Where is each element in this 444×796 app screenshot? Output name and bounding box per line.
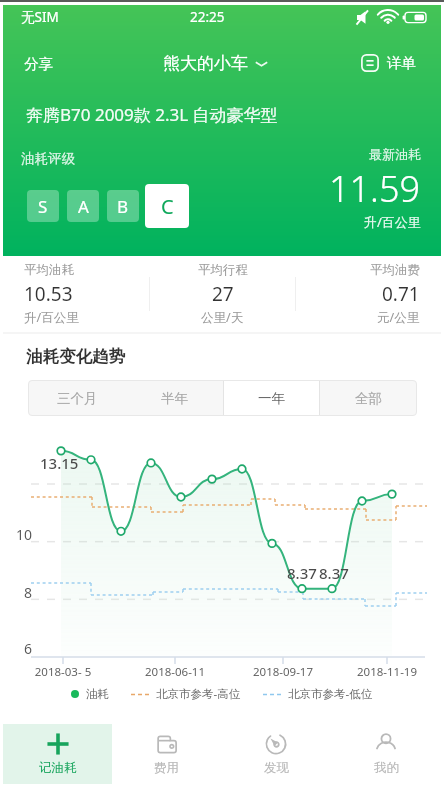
button[interactable]: 分享 bbox=[19, 51, 58, 77]
staticText: 费用 bbox=[154, 760, 179, 776]
staticText: 我的 bbox=[374, 760, 399, 776]
button[interactable]: 费用 bbox=[112, 724, 221, 784]
button[interactable]: 半年 bbox=[126, 380, 223, 416]
staticText: 10 bbox=[3, 525, 32, 544]
button[interactable]: 平均油耗 bbox=[3, 256, 149, 332]
staticText: 全部 bbox=[355, 390, 382, 407]
button[interactable]: B bbox=[107, 190, 139, 222]
staticText: 发现 bbox=[264, 760, 289, 776]
staticText: 2018-11-19 bbox=[343, 664, 431, 680]
staticText: 10.53 bbox=[24, 281, 73, 307]
staticText: 熊大的小车 bbox=[163, 53, 248, 74]
staticText: A bbox=[78, 195, 89, 218]
staticText: 详单 bbox=[387, 54, 416, 72]
staticText: 油耗变化趋势 bbox=[26, 346, 125, 367]
staticText: B bbox=[117, 195, 129, 218]
staticText: 最新油耗 bbox=[369, 146, 421, 162]
staticText: 平均油耗 bbox=[24, 262, 74, 278]
button[interactable]: 我的 bbox=[331, 724, 441, 784]
staticText: C bbox=[161, 193, 174, 220]
button[interactable]: 平均油费 bbox=[296, 256, 441, 332]
staticText: 升/百公里 bbox=[24, 309, 79, 326]
staticText: 三个月 bbox=[57, 390, 98, 407]
staticText: 2018-09-17 bbox=[239, 664, 327, 680]
staticText: 半年 bbox=[161, 390, 188, 407]
staticText: 平均行程 bbox=[198, 262, 248, 278]
staticText: 无SIM bbox=[21, 8, 59, 26]
button[interactable]: 记油耗 bbox=[3, 724, 112, 784]
button[interactable]: 三个月 bbox=[28, 380, 126, 416]
button[interactable]: 全部 bbox=[320, 380, 417, 416]
staticText: 北京市参考-低位 bbox=[288, 686, 373, 702]
button[interactable]: 一年 bbox=[223, 380, 320, 416]
staticText: 22:25 bbox=[190, 8, 225, 26]
button[interactable]: 发现 bbox=[221, 724, 331, 784]
staticText: 2018-06-11 bbox=[131, 664, 219, 680]
staticText: 6 bbox=[3, 639, 32, 658]
staticText: 分享 bbox=[24, 55, 53, 73]
button[interactable]: A bbox=[67, 190, 99, 222]
staticText: 13.15 bbox=[40, 453, 79, 473]
button[interactable]: C bbox=[145, 184, 189, 228]
staticText: 8 bbox=[3, 583, 32, 602]
button[interactable]: S bbox=[27, 190, 59, 222]
staticText: 油耗评级 bbox=[21, 150, 75, 167]
staticText: 平均油费 bbox=[370, 262, 420, 278]
staticText: 8.37 bbox=[287, 563, 317, 583]
staticText: 升/百公里 bbox=[364, 213, 421, 231]
staticText: 11.59 bbox=[329, 164, 421, 213]
staticText: 元/公里 bbox=[377, 309, 420, 326]
staticText: 一年 bbox=[258, 390, 285, 407]
staticText: 27 bbox=[212, 281, 234, 307]
staticText: 0.71 bbox=[382, 281, 420, 307]
staticText: 记油耗 bbox=[39, 760, 77, 776]
staticText: S bbox=[38, 195, 48, 218]
button[interactable]: 熊大的小车 bbox=[159, 49, 272, 78]
staticText: 8.37 bbox=[319, 563, 349, 583]
button[interactable]: 详单 bbox=[357, 50, 420, 76]
staticText: 公里/天 bbox=[201, 309, 244, 326]
staticText: 油耗 bbox=[86, 687, 109, 701]
staticText: 2018-03- 5 bbox=[19, 664, 107, 680]
button[interactable]: 平均行程 bbox=[150, 256, 295, 332]
staticText: 北京市参考-高位 bbox=[156, 686, 241, 702]
staticText: 奔腾B70 2009款 2.3L 自动豪华型 bbox=[26, 103, 278, 126]
